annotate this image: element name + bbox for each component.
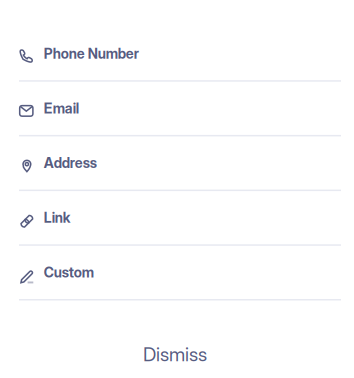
button[interactable]: Custom <box>0 246 354 300</box>
staticText: Phone Number <box>44 45 139 62</box>
button[interactable]: Email <box>0 82 354 136</box>
staticText: Link <box>44 209 71 226</box>
button[interactable]: Link <box>0 191 354 246</box>
staticText: Email <box>44 100 79 117</box>
button[interactable]: Dismiss <box>0 329 354 378</box>
staticText: Dismiss <box>143 343 207 366</box>
staticText: Address <box>44 154 97 171</box>
button[interactable]: Address <box>0 136 354 191</box>
button[interactable]: Phone Number <box>0 27 354 82</box>
staticText: Custom <box>44 264 94 281</box>
